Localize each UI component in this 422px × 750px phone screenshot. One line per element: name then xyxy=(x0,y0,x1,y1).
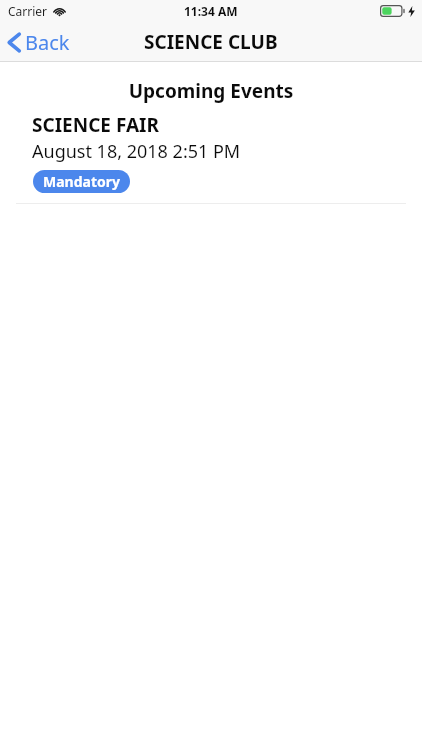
staticText: SCIENCE FAIR xyxy=(32,112,159,138)
staticText: 11:34 AM xyxy=(184,3,238,19)
staticText: Back xyxy=(25,29,70,56)
staticText: August 18, 2018 2:51 PM xyxy=(32,139,241,164)
staticText: SCIENCE CLUB xyxy=(144,29,278,55)
button[interactable]: Back xyxy=(0,25,80,60)
button[interactable]: SCIENCE FAIR xyxy=(0,112,422,204)
staticText: Mandatory xyxy=(43,172,120,191)
staticText: Carrier xyxy=(8,3,48,19)
staticText: Upcoming Events xyxy=(0,78,422,104)
